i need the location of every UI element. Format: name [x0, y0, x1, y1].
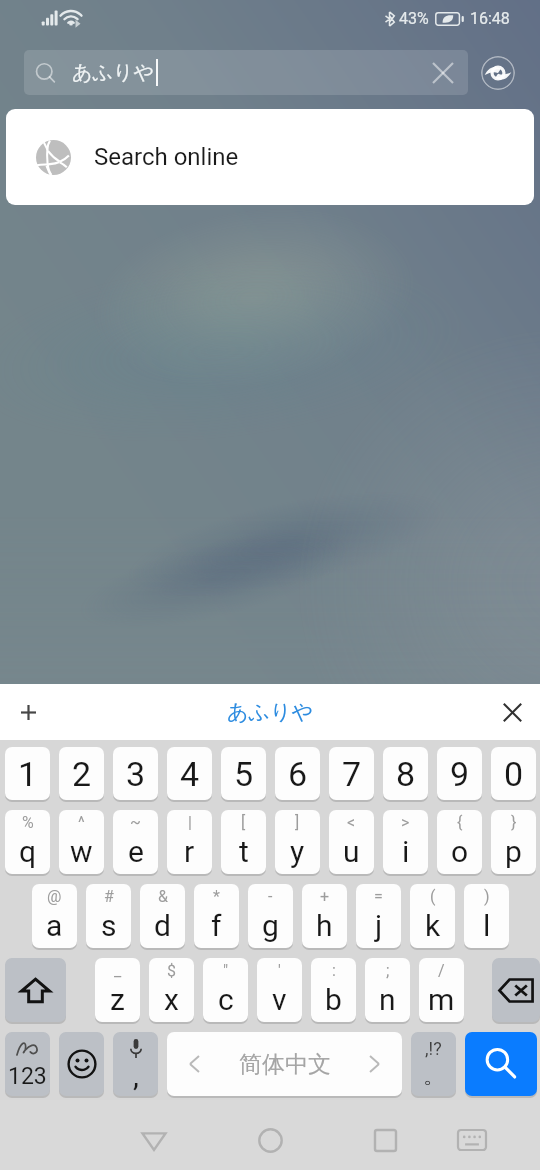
staticText: [: [241, 813, 246, 832]
staticText: t: [239, 834, 249, 869]
button[interactable]: |: [167, 810, 212, 876]
button[interactable]: %: [5, 810, 50, 876]
button[interactable]: {: [437, 810, 482, 876]
button[interactable]: Shift: [5, 958, 66, 1024]
button[interactable]: Voice input: [113, 1032, 158, 1098]
button[interactable]: Home: [242, 1112, 298, 1168]
button[interactable]: Visual search: [481, 56, 515, 90]
button[interactable]: ^: [59, 810, 104, 876]
button[interactable]: Backspace: [492, 958, 540, 1024]
staticText: 8: [396, 754, 416, 794]
button[interactable]: Hide keyboard: [444, 1112, 500, 1168]
button[interactable]: _: [95, 958, 140, 1024]
staticText: 5: [234, 754, 254, 794]
staticText: ~: [130, 813, 141, 832]
staticText: ): [484, 887, 490, 906]
staticText: /: [438, 961, 445, 980]
button[interactable]: 0: [491, 747, 536, 802]
staticText: }: [511, 813, 517, 832]
staticText: 43%: [399, 9, 429, 28]
button[interactable]: 5: [221, 747, 266, 802]
button[interactable]: >: [383, 810, 428, 876]
button[interactable]: Punctuation: [411, 1032, 456, 1098]
button[interactable]: ]: [275, 810, 320, 876]
staticText: 简体中文: [239, 1050, 331, 1079]
staticText: %: [22, 813, 34, 832]
staticText: Search online: [94, 143, 239, 171]
button[interactable]: Symbols: [5, 1032, 50, 1098]
button[interactable]: 3: [113, 747, 158, 802]
staticText: :: [332, 961, 336, 980]
button[interactable]: ~: [113, 810, 158, 876]
button[interactable]: /: [419, 958, 464, 1024]
button[interactable]: 2: [59, 747, 104, 802]
button[interactable]: 6: [275, 747, 320, 802]
button[interactable]: 1: [5, 747, 50, 802]
staticText: u: [343, 834, 360, 869]
staticText: 1: [18, 754, 38, 794]
button[interactable]: 4: [167, 747, 212, 802]
staticText: ,: [133, 1058, 139, 1093]
button[interactable]: +: [302, 884, 347, 950]
button[interactable]: *: [194, 884, 239, 950]
staticText: ;: [386, 961, 390, 980]
staticText: &: [158, 887, 168, 906]
button[interactable]: -: [248, 884, 293, 950]
button[interactable]: Search online: [6, 109, 534, 205]
button[interactable]: Close keyboard: [484, 684, 540, 740]
staticText: l: [483, 908, 491, 943]
button[interactable]: <: [329, 810, 374, 876]
button[interactable]: 7: [329, 747, 374, 802]
staticText: +: [320, 887, 330, 906]
button[interactable]: #: [86, 884, 131, 950]
button[interactable]: (: [410, 884, 455, 950]
staticText: >: [401, 813, 410, 832]
button[interactable]: Add word: [0, 684, 56, 740]
staticText: h: [316, 908, 333, 943]
staticText: 2: [72, 754, 92, 794]
staticText: m: [428, 982, 455, 1017]
button[interactable]: Recent apps: [357, 1112, 413, 1168]
button[interactable]: 8: [383, 747, 428, 802]
staticText: *: [213, 887, 220, 906]
button[interactable]: :: [311, 958, 356, 1024]
button[interactable]: $: [149, 958, 194, 1024]
staticText: p: [505, 834, 522, 869]
staticText: _: [114, 961, 122, 980]
staticText: (: [430, 887, 436, 906]
button[interactable]: ': [257, 958, 302, 1024]
staticText: 0: [504, 754, 524, 794]
staticText: b: [325, 982, 342, 1017]
staticText: -: [268, 887, 273, 906]
button[interactable]: あふりや: [24, 50, 468, 95]
staticText: あふりや: [227, 699, 313, 725]
staticText: 6: [288, 754, 308, 794]
button[interactable]: ;: [365, 958, 410, 1024]
button[interactable]: =: [356, 884, 401, 950]
button[interactable]: 9: [437, 747, 482, 802]
button[interactable]: ): [464, 884, 509, 950]
staticText: n: [379, 982, 396, 1017]
staticText: d: [154, 908, 171, 943]
button[interactable]: Clear text: [426, 56, 460, 90]
staticText: 16:48: [470, 9, 510, 28]
button[interactable]: Emoji: [59, 1032, 104, 1098]
staticText: g: [262, 908, 279, 943]
button[interactable]: &: [140, 884, 185, 950]
button[interactable]: [: [221, 810, 266, 876]
button[interactable]: Search: [465, 1032, 537, 1098]
staticText: |: [188, 813, 192, 832]
button[interactable]: }: [491, 810, 536, 876]
button[interactable]: ": [203, 958, 248, 1024]
staticText: f: [211, 908, 222, 943]
staticText: z: [110, 982, 125, 1017]
button[interactable]: Back: [126, 1112, 182, 1168]
staticText: 7: [342, 754, 362, 794]
staticText: <: [347, 813, 356, 832]
button[interactable]: Switch language: [167, 1032, 402, 1098]
staticText: $: [167, 961, 176, 980]
staticText: x: [164, 982, 179, 1017]
staticText: o: [451, 834, 469, 869]
staticText: ,!?: [425, 1038, 442, 1059]
button[interactable]: @: [32, 884, 77, 950]
